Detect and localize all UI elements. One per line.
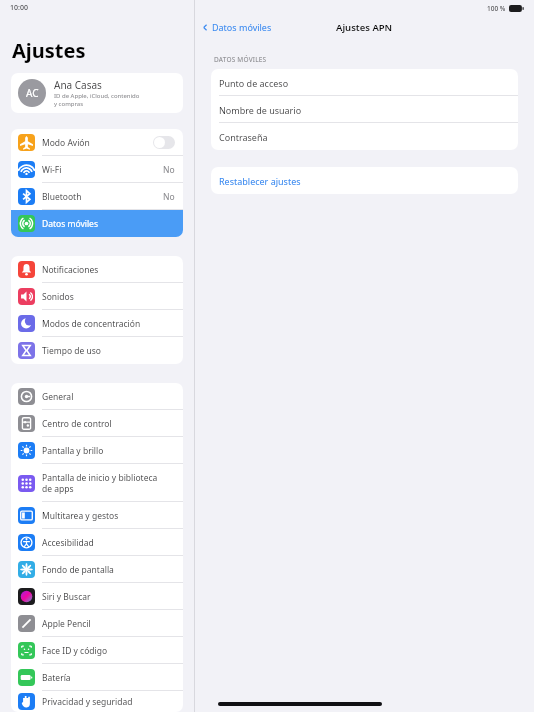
staticText: Datos móviles [42, 218, 98, 230]
staticText: Ajustes APN [336, 21, 393, 34]
staticText: Ajustes [12, 37, 86, 64]
staticText: Punto de acceso [219, 77, 289, 89]
staticText: Siri y Buscar [42, 591, 91, 603]
staticText: Bluetooth [42, 191, 82, 203]
staticText: Face ID y código [42, 645, 108, 657]
button[interactable]: Bluetooth [11, 183, 183, 210]
button[interactable]: Apple Pencil [11, 610, 183, 637]
staticText: Multitarea y gestos [42, 510, 119, 522]
staticText: Sonidos [42, 291, 74, 303]
staticText: 10:00 [10, 3, 28, 13]
staticText: Pantalla y brillo [42, 445, 104, 457]
staticText: Fondo de pantalla [42, 564, 114, 576]
staticText: Modo Avión [42, 137, 90, 149]
button[interactable]: Siri y Buscar [11, 583, 183, 610]
staticText: Pantalla de inicio y biblioteca de apps [42, 472, 158, 494]
button[interactable]: AC [11, 73, 183, 113]
staticText: General [42, 391, 74, 403]
button[interactable]: Modo Avión [11, 129, 183, 156]
staticText: Nombre de usuario [219, 104, 302, 116]
staticText: Modos de concentración [42, 318, 141, 330]
staticText: No [163, 164, 175, 176]
staticText: ID de Apple, iCloud, contenido y compras [54, 92, 140, 108]
button[interactable]: Face ID y código [11, 637, 183, 664]
staticText: Privacidad y seguridad [42, 696, 133, 708]
staticText: Contraseña [219, 131, 268, 143]
button[interactable]: Sonidos [11, 283, 183, 310]
button[interactable]: Accesibilidad [11, 529, 183, 556]
button[interactable]: Batería [11, 664, 183, 691]
staticText: Batería [42, 672, 71, 684]
button[interactable]: Restablecer ajustes [211, 167, 518, 194]
button[interactable]: Contraseña [211, 123, 518, 150]
button[interactable]: Centro de control [11, 410, 183, 437]
button[interactable]: Modos de concentración [11, 310, 183, 337]
staticText: 100 % [487, 4, 506, 13]
button[interactable]: Datos móviles [11, 210, 183, 237]
button[interactable]: General [11, 383, 183, 410]
staticText: Accesibilidad [42, 537, 94, 549]
staticText: Wi-Fi [42, 164, 62, 176]
button[interactable]: Pantalla de inicio y biblioteca de apps [11, 464, 183, 502]
button[interactable]: Modo Avión [153, 136, 175, 149]
staticText: No [163, 191, 175, 203]
staticText: Centro de control [42, 418, 112, 430]
button[interactable]: Tiempo de uso [11, 337, 183, 364]
staticText: Datos móviles [212, 21, 272, 33]
button[interactable]: Datos móviles [201, 21, 272, 33]
button[interactable]: Nombre de usuario [211, 96, 518, 123]
staticText: AC [26, 86, 39, 100]
staticText: DATOS MÓVILES [214, 55, 267, 64]
staticText: Restablecer ajustes [219, 175, 301, 187]
button[interactable]: Notificaciones [11, 256, 183, 283]
staticText: Notificaciones [42, 264, 99, 276]
staticText: Apple Pencil [42, 618, 91, 630]
button[interactable]: Pantalla y brillo [11, 437, 183, 464]
button[interactable]: Wi-Fi [11, 156, 183, 183]
button[interactable]: Fondo de pantalla [11, 556, 183, 583]
button[interactable]: Multitarea y gestos [11, 502, 183, 529]
staticText: Ana Casas [54, 78, 102, 92]
button[interactable]: Privacidad y seguridad [11, 691, 183, 712]
button[interactable]: Punto de acceso [211, 69, 518, 96]
staticText: Tiempo de uso [42, 345, 101, 357]
